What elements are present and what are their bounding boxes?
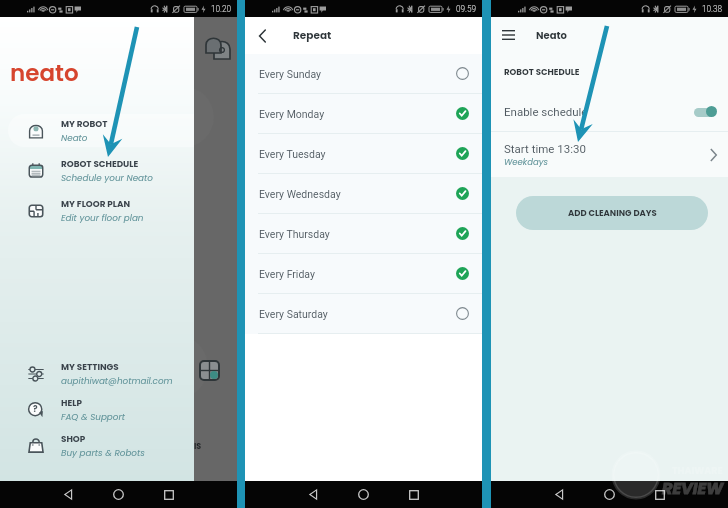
staticText: Neato	[61, 132, 88, 144]
staticText: neato	[10, 57, 79, 89]
staticText: Every Sunday	[259, 68, 321, 80]
staticText: ADD CLEANING DAYS	[568, 207, 657, 219]
button[interactable]: Recents	[156, 482, 181, 507]
staticText: ROBOT SCHEDULE	[61, 158, 139, 170]
staticText: ?	[33, 403, 38, 415]
staticText: aupithiwat@hotmail.com	[61, 375, 173, 387]
staticText: Repeat	[293, 28, 332, 43]
staticText: Edit your floor plan	[61, 212, 144, 224]
staticText: 10.20	[211, 4, 232, 14]
staticText: MY SETTINGS	[61, 361, 119, 373]
button[interactable]: Back	[245, 19, 279, 53]
staticText: MY ROBOT	[61, 118, 108, 130]
button[interactable]: Every Monday	[245, 94, 482, 133]
staticText: ROBOT SCHEDULE	[504, 66, 580, 78]
staticText: Every Tuesday	[259, 148, 326, 160]
staticText: Weekdays	[504, 156, 548, 168]
button[interactable]: Recents	[401, 482, 426, 507]
staticText: Schedule your Neato	[61, 172, 153, 184]
staticText: Enable schedule	[504, 105, 588, 118]
button[interactable]: Menu	[491, 18, 525, 52]
staticText: Every Saturday	[259, 308, 328, 320]
button[interactable]: MY FLOOR PLAN	[8, 194, 194, 227]
staticText: FAQ & Support	[61, 411, 125, 423]
button[interactable]: Every Wednesday	[245, 174, 482, 213]
staticText: SHOP	[61, 433, 86, 445]
button[interactable]: Enable schedule	[491, 98, 728, 124]
staticText: MY FLOOR PLAN	[61, 198, 131, 210]
staticText: Every Wednesday	[259, 188, 341, 200]
staticText: Neato	[536, 28, 567, 42]
button[interactable]: ADD CLEANING DAYS	[516, 196, 708, 230]
button[interactable]: Every Saturday	[245, 294, 482, 333]
button[interactable]: Every Tuesday	[245, 134, 482, 173]
staticText: Start time 13:30	[504, 142, 586, 155]
staticText: Every Monday	[259, 108, 325, 120]
button[interactable]: MY SETTINGS	[8, 357, 194, 390]
staticText: Buy parts & Robots	[61, 447, 145, 459]
staticText: 10.38	[702, 4, 723, 14]
button[interactable]: Recents	[647, 482, 672, 507]
button[interactable]: Every Sunday	[245, 54, 482, 93]
button[interactable]: Start time 13:30	[491, 132, 728, 177]
button[interactable]: MY ROBOT	[8, 114, 194, 147]
staticText: IS	[194, 441, 202, 452]
button[interactable]: ROBOT SCHEDULE	[8, 154, 194, 187]
staticText: Every Friday	[259, 268, 315, 280]
button[interactable]: Every Friday	[245, 254, 482, 293]
staticText: Every Thursday	[259, 228, 330, 240]
button[interactable]: Home	[597, 482, 622, 507]
button[interactable]: Home	[351, 482, 376, 507]
button[interactable]: SHOP	[8, 429, 194, 462]
staticText: REVIEW	[662, 477, 723, 499]
button[interactable]: Back	[56, 482, 81, 507]
button[interactable]: Every Thursday	[245, 214, 482, 253]
button[interactable]: Back	[547, 482, 572, 507]
button[interactable]: Home	[106, 482, 131, 507]
staticText: HELP	[61, 397, 82, 409]
button[interactable]: Back	[301, 482, 326, 507]
staticText: 09.59	[456, 4, 477, 14]
button[interactable]: ?	[8, 393, 194, 426]
